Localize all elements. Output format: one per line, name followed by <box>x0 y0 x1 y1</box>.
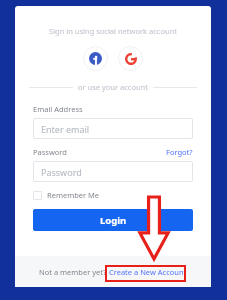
staticText: Create a New Account <box>109 267 187 277</box>
button[interactable]: Password <box>33 161 193 182</box>
staticText: Password <box>33 147 67 157</box>
button[interactable]: Sign in with Google <box>118 46 143 71</box>
button[interactable]: Enter email <box>33 118 193 139</box>
staticText: Enter email <box>41 123 90 135</box>
staticText: Forgot? <box>166 147 193 157</box>
staticText: Email Address <box>33 104 83 114</box>
staticText: or use your account <box>78 82 148 92</box>
button[interactable]: Remember Me <box>33 190 100 200</box>
staticText: Remember Me <box>47 190 100 200</box>
button[interactable]: Sign in with Facebook <box>83 46 108 71</box>
staticText: Not a member yet? <box>39 267 107 277</box>
button[interactable]: Forgot? <box>166 147 193 157</box>
staticText: Login <box>100 214 127 227</box>
button[interactable]: Login <box>33 209 193 231</box>
staticText: Sign in using social network account <box>15 26 211 36</box>
button[interactable]: Create a New Account <box>108 266 188 278</box>
staticText: Password <box>41 166 82 178</box>
